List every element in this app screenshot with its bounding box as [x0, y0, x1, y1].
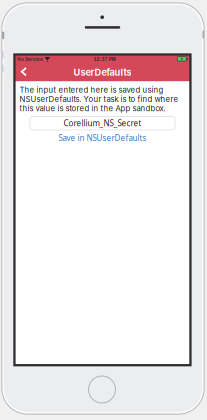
staticText: The input entered here is saved using NS…: [19, 85, 178, 113]
staticText: Corellium_NS_Secret: [63, 118, 141, 128]
button[interactable]: Back: [16, 64, 32, 80]
staticText: 12:37 PM: [93, 55, 115, 63]
button[interactable]: Save in NSUserDefaults: [52, 131, 152, 145]
staticText: UserDefaults: [73, 67, 131, 78]
staticText: Save in NSUserDefaults: [58, 132, 146, 143]
staticText: No Service: [17, 55, 43, 63]
